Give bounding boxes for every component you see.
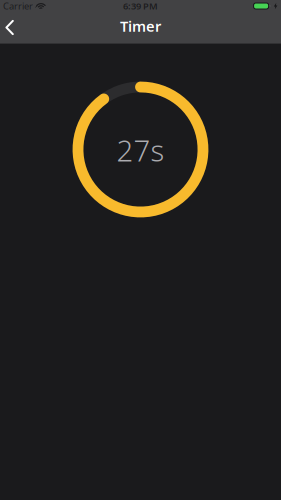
staticText: Timer (120, 16, 161, 36)
staticText: 6:39 PM (123, 0, 158, 12)
staticText: 27s (116, 130, 164, 169)
staticText: Carrier (3, 0, 33, 12)
button[interactable]: Back (0, 12, 22, 40)
